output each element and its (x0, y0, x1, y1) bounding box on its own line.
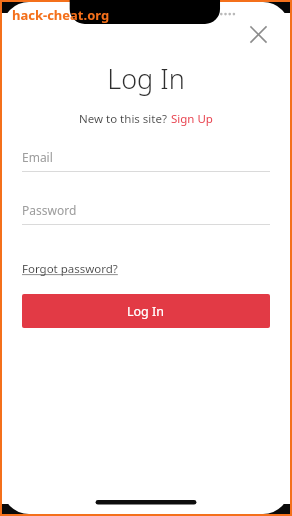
button[interactable]: Sign Up (171, 111, 213, 127)
staticText: Forgot password? (22, 261, 118, 277)
staticText: Email (22, 149, 53, 165)
button[interactable]: Forgot password? (22, 261, 118, 277)
staticText: Password (22, 202, 77, 218)
button[interactable]: Log In (22, 294, 270, 328)
staticText: New to this site? (79, 111, 167, 127)
button[interactable]: Password (22, 202, 270, 225)
staticText: Sign Up (171, 111, 213, 127)
staticText: hack-cheat.org (12, 6, 110, 24)
staticText: 11:34 (28, 7, 57, 22)
staticText: Log In (2, 60, 290, 97)
staticText: Log In (127, 303, 165, 320)
button[interactable]: Close (242, 18, 274, 50)
button[interactable]: Email (22, 149, 270, 172)
